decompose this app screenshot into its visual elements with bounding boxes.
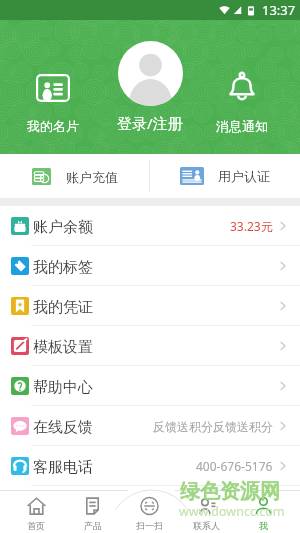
- button[interactable]: 客服电话: [0, 446, 300, 486]
- staticText: 账户充值: [66, 169, 118, 185]
- staticText: 400-676-5176: [196, 458, 273, 474]
- staticText: 33.23元: [230, 218, 273, 234]
- button[interactable]: 扫一扫: [121, 492, 178, 531]
- staticText: 13:37: [262, 1, 296, 19]
- button[interactable]: 首页: [8, 492, 64, 531]
- staticText: 我: [259, 520, 268, 531]
- staticText: 反馈送积分反馈送积分: [153, 419, 273, 434]
- staticText: 我的标签: [33, 258, 93, 277]
- staticText: www.downcc.com: [179, 503, 285, 520]
- other: 消息通知: [228, 70, 256, 102]
- button[interactable]: 产品: [64, 492, 121, 531]
- button[interactable]: 消息通知: [208, 70, 276, 134]
- staticText: 我的凭证: [33, 298, 93, 317]
- staticText: 帮助中心: [33, 378, 93, 397]
- button[interactable]: 用户认证: [150, 167, 300, 185]
- staticText: 在线反馈: [33, 418, 93, 437]
- button[interactable]: 帮助中心: [0, 366, 300, 406]
- button[interactable]: 我: [235, 492, 292, 531]
- staticText: 首页: [27, 520, 45, 531]
- staticText: 登录/注册: [117, 113, 183, 133]
- button[interactable]: 账户余额: [0, 206, 300, 246]
- staticText: 联系人: [193, 520, 220, 531]
- button[interactable]: 账户充值: [0, 168, 149, 185]
- button[interactable]: 我的凭证: [0, 286, 300, 326]
- staticText: 产品: [84, 520, 102, 531]
- staticText: 扫一扫: [136, 520, 163, 531]
- button[interactable]: 登录/注册: [117, 41, 183, 133]
- staticText: 绿色资源网: [180, 479, 280, 504]
- button[interactable]: 模板设置: [0, 326, 300, 366]
- button[interactable]: 我的标签: [0, 246, 300, 286]
- button[interactable]: 我的名片: [19, 74, 87, 134]
- button[interactable]: 在线反馈: [0, 406, 300, 446]
- staticText: 用户认证: [218, 168, 270, 184]
- button[interactable]: 联系人: [178, 492, 235, 531]
- staticText: 我的名片: [27, 118, 79, 134]
- staticText: 消息通知: [216, 118, 268, 134]
- staticText: 客服电话: [33, 458, 93, 477]
- staticText: 模板设置: [33, 338, 93, 357]
- staticText: 账户余额: [33, 218, 93, 237]
- other: 我的名片: [36, 74, 70, 102]
